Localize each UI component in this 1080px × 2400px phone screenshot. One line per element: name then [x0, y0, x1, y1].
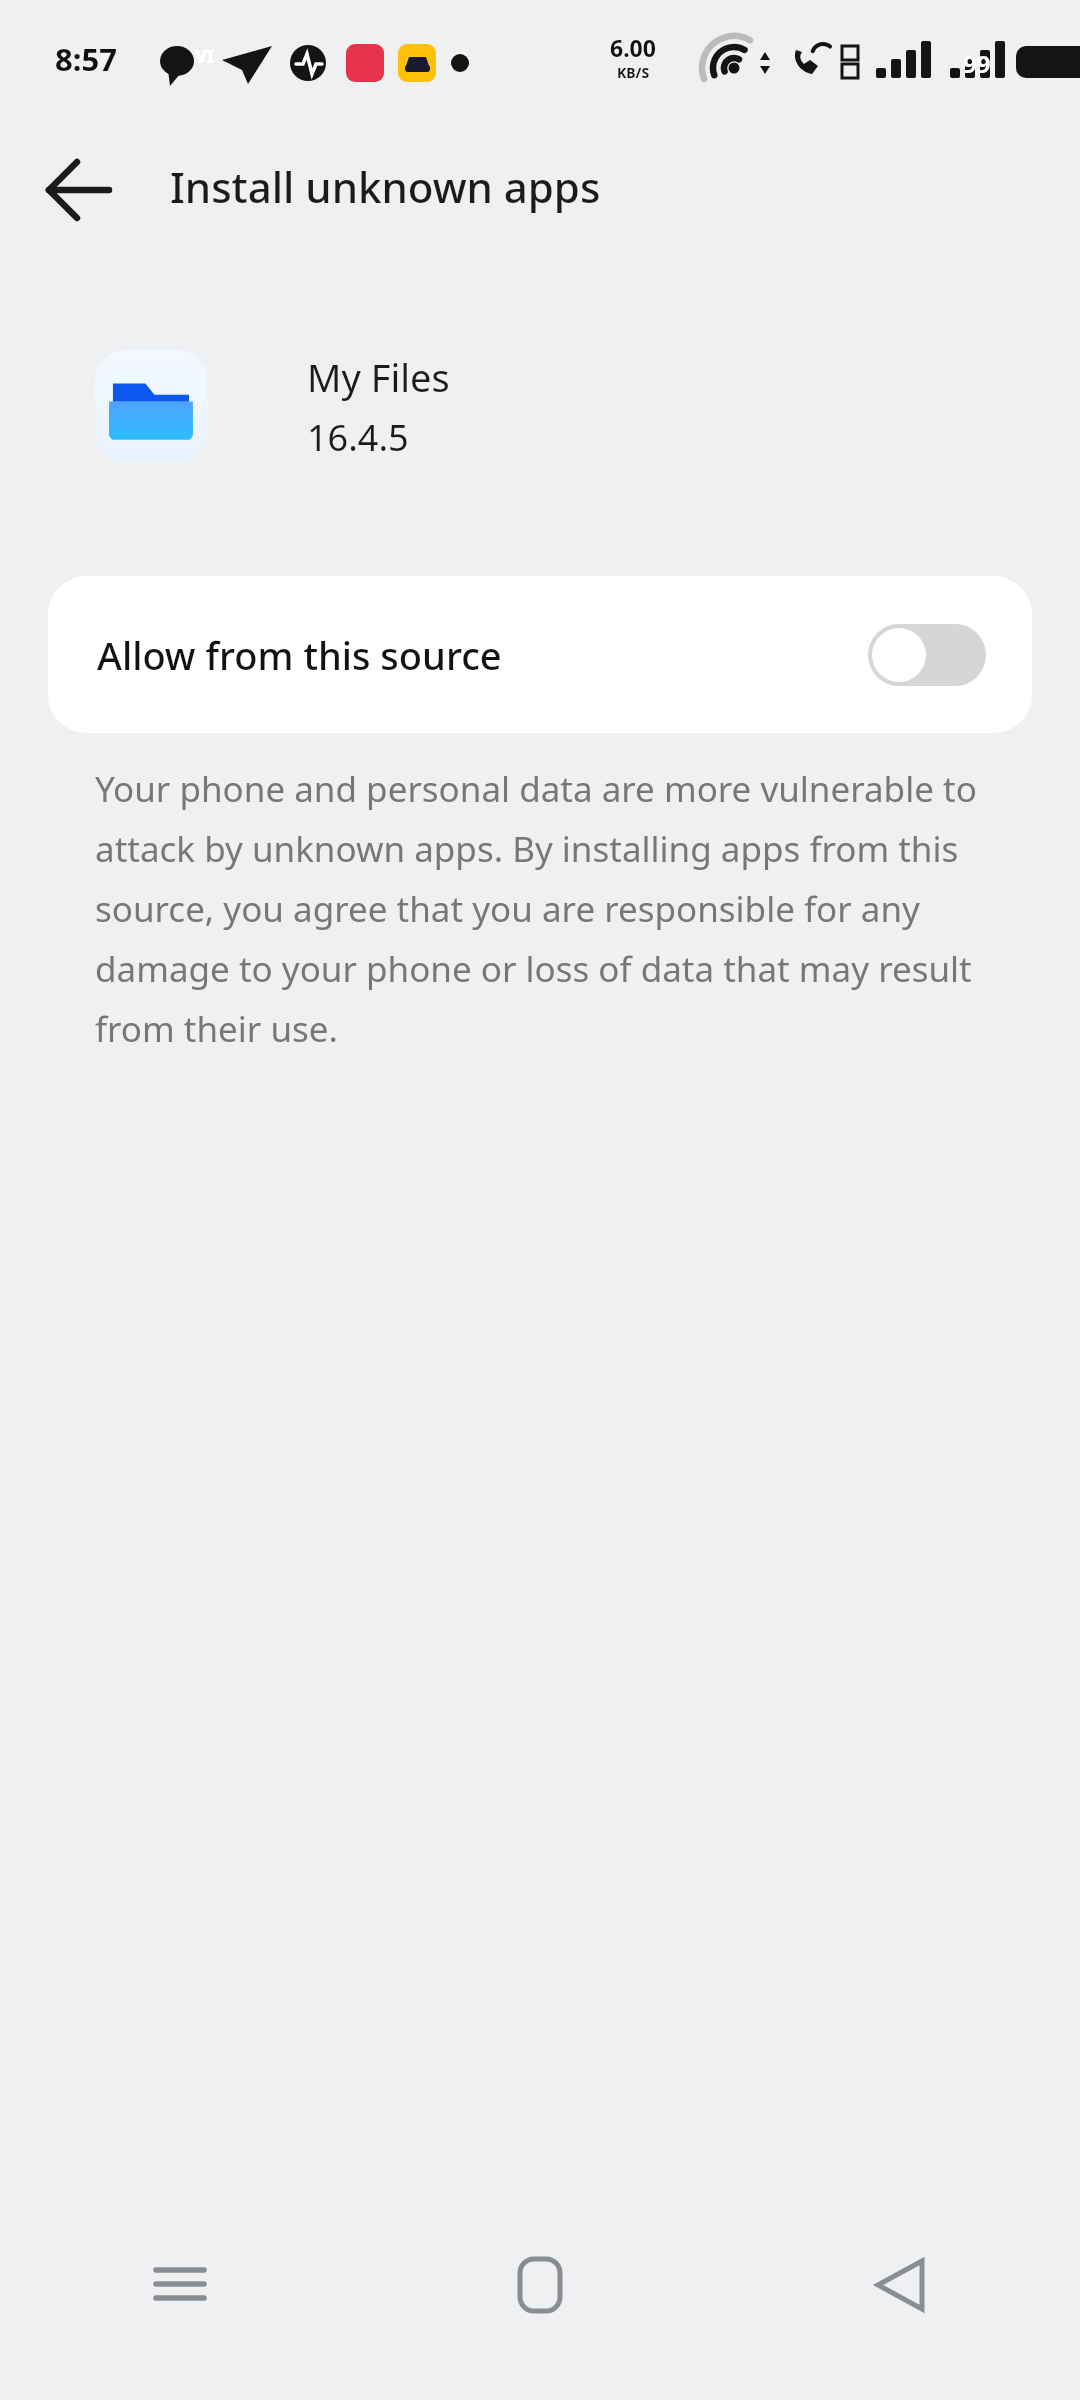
staticText: Your phone and personal data are more vu… [95, 765, 985, 1052]
staticText: VI [195, 45, 215, 68]
staticText: Allow from this source [97, 629, 502, 681]
button[interactable]: Allow from this source [48, 576, 1032, 733]
staticText: 6.00 [610, 32, 656, 63]
button[interactable]: Back [720, 2210, 1080, 2360]
staticText: 16.4.5 [307, 413, 409, 462]
button[interactable]: Recent apps [0, 2210, 360, 2360]
other: Allow from this source toggle [868, 624, 986, 686]
staticText: 99 [963, 47, 991, 80]
staticText: KB/S [617, 63, 650, 82]
button[interactable]: Home [360, 2210, 720, 2360]
staticText: 8:57 [55, 38, 117, 80]
button[interactable]: Back [30, 142, 126, 238]
staticText: Install unknown apps [170, 158, 601, 215]
staticText: My Files [307, 351, 450, 403]
